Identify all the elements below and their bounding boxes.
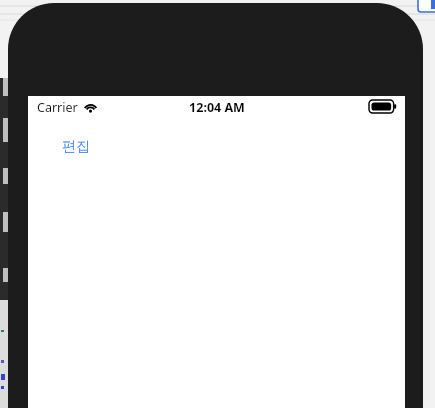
staticText: 12:04 AM [189,99,245,116]
staticText: Carrier [37,99,78,116]
other: Wi-Fi signal [83,102,98,114]
other: Battery full [369,100,397,113]
button[interactable]: 편집 [58,136,94,158]
staticText: 편집 [62,138,90,156]
